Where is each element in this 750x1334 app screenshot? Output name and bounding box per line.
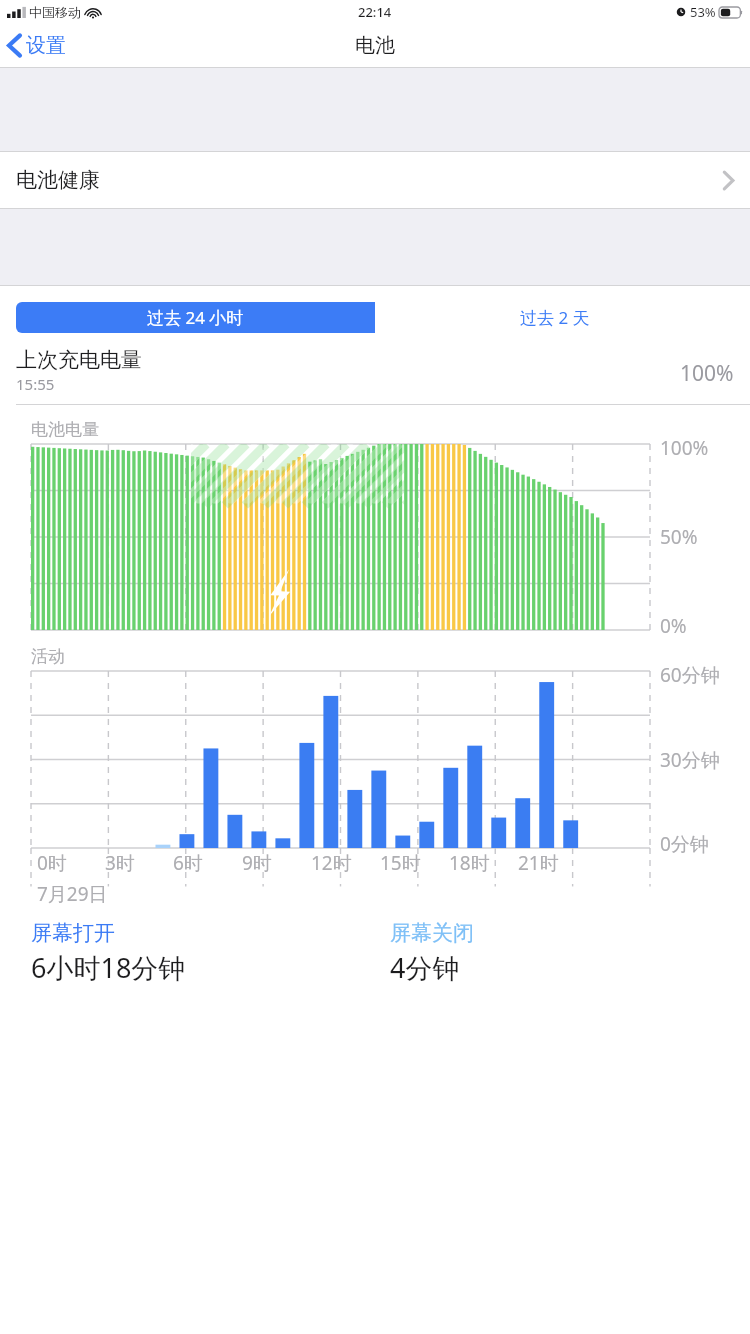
staticText: 7月29日 [37, 881, 108, 907]
staticText: 电池 [355, 33, 395, 58]
staticText: 21时 [518, 850, 559, 876]
staticText: 15时 [380, 850, 421, 876]
staticText: 6小时18分钟 [31, 949, 186, 986]
button[interactable]: 屏幕打开 [31, 920, 115, 946]
button[interactable]: 电池健康 [0, 152, 750, 208]
staticText: 53% [690, 3, 716, 21]
button[interactable]: 过去 2 天 [375, 302, 734, 333]
staticText: 9时 [242, 850, 272, 876]
staticText: 100% [680, 359, 734, 388]
staticText: 12时 [311, 850, 352, 876]
staticText: 100% [660, 435, 709, 461]
staticText: 4分钟 [390, 949, 460, 986]
staticText: 活动 [31, 646, 65, 667]
staticText: 22:14 [358, 3, 392, 21]
staticText: 中国移动 [29, 4, 81, 20]
staticText: 过去 24 小时 [147, 306, 244, 329]
staticText: 3时 [105, 850, 135, 876]
staticText: 30分钟 [660, 747, 720, 773]
staticText: 50% [660, 524, 698, 550]
staticText: 60分钟 [660, 662, 720, 688]
staticText: 设置 [26, 33, 66, 58]
staticText: 15:55 [16, 374, 55, 394]
staticText: 过去 2 天 [520, 306, 590, 329]
staticText: 电池电量 [31, 419, 99, 440]
staticText: 电池健康 [16, 167, 100, 193]
staticText: 0分钟 [660, 831, 709, 857]
button[interactable]: 屏幕关闭 [390, 920, 474, 946]
button[interactable]: 设置 [0, 27, 78, 64]
staticText: 上次充电电量 [16, 347, 142, 373]
staticText: 0时 [37, 850, 67, 876]
staticText: 0% [660, 613, 687, 639]
staticText: 18时 [449, 850, 490, 876]
staticText: 6时 [173, 850, 203, 876]
button[interactable]: 过去 24 小时 [16, 302, 375, 333]
